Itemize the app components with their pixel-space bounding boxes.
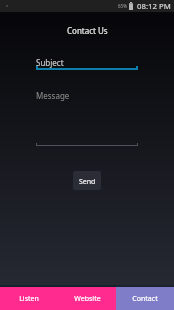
button[interactable]: Send	[73, 171, 101, 190]
staticText: Contact	[132, 294, 158, 304]
other: Battery	[129, 2, 133, 10]
staticText: 08:12 PM	[137, 1, 171, 12]
staticText: 65%	[118, 3, 127, 9]
staticText: Contact Us	[67, 25, 108, 36]
staticText: Send	[79, 177, 96, 187]
other: Notification	[3, 2, 11, 10]
staticText: Subject	[36, 57, 64, 68]
staticText: Listen	[19, 294, 39, 304]
staticText: Website	[74, 294, 101, 304]
button[interactable]: Contact	[116, 287, 174, 310]
button[interactable]: Listen	[0, 287, 58, 310]
staticText: Message	[36, 90, 70, 101]
button[interactable]: Website	[58, 287, 116, 310]
